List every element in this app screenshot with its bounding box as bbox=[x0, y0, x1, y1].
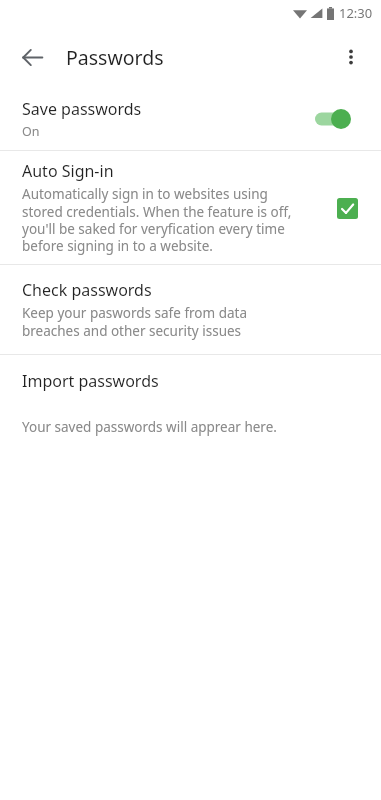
staticText: On bbox=[22, 123, 40, 140]
staticText: Automatically sign in to websites using … bbox=[22, 185, 309, 255]
staticText: Save passwords bbox=[22, 98, 142, 120]
staticText: 12:30 bbox=[339, 4, 373, 22]
button[interactable]: Auto Sign-in bbox=[0, 151, 381, 264]
staticText: Auto Sign-in bbox=[22, 160, 114, 182]
button[interactable]: More options bbox=[329, 35, 373, 79]
staticText: Check passwords bbox=[22, 279, 152, 301]
button[interactable]: Import passwords bbox=[0, 355, 381, 406]
staticText: Keep your paswords safe from data breach… bbox=[22, 304, 255, 340]
staticText: Your saved passwords will apprear here. bbox=[22, 418, 277, 436]
button[interactable]: Auto Sign-in checkbox bbox=[327, 188, 367, 228]
button[interactable]: Back bbox=[10, 35, 54, 79]
staticText: Import passwords bbox=[22, 370, 159, 392]
other: Save passwords toggle bbox=[315, 105, 365, 133]
button[interactable]: Check passwords bbox=[0, 265, 381, 354]
button[interactable]: Save passwords bbox=[0, 88, 381, 150]
staticText: Passwords bbox=[66, 44, 164, 71]
